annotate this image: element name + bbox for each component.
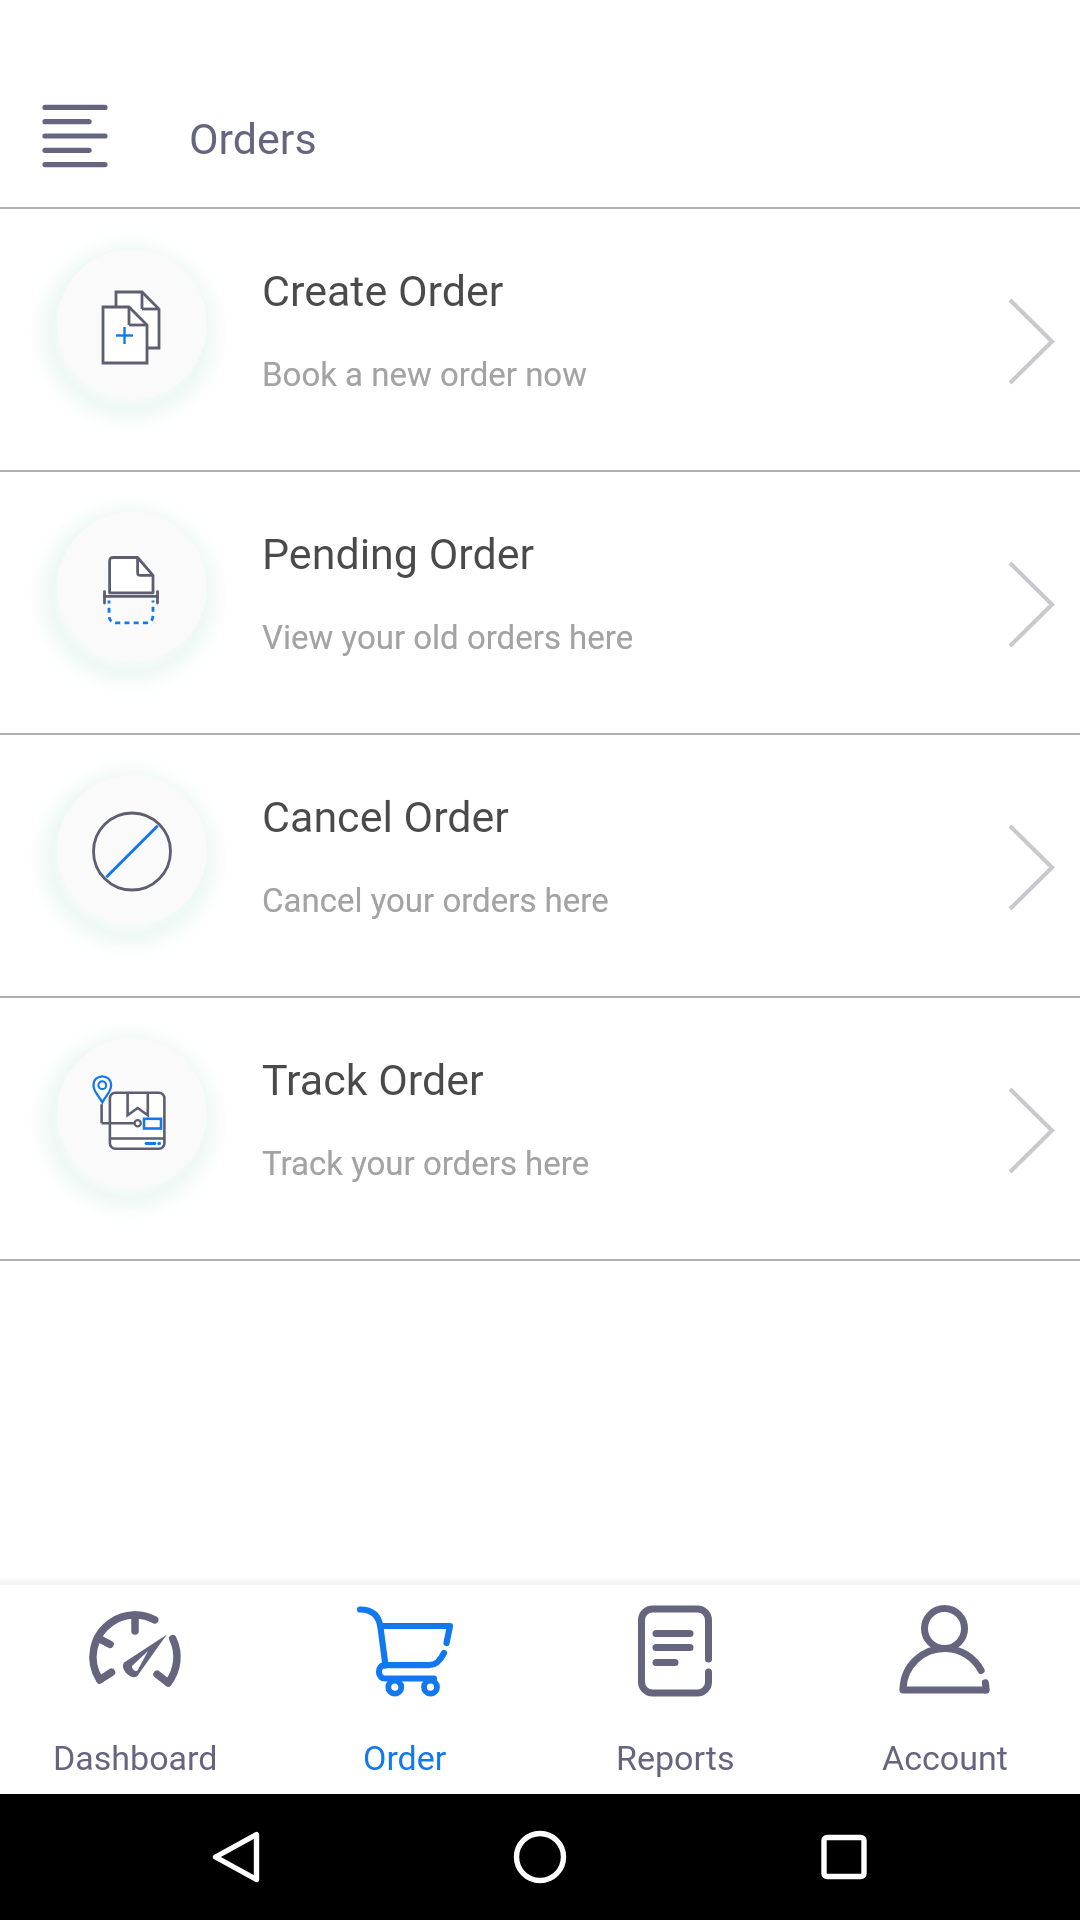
button[interactable]: Create Order (0, 209, 1080, 470)
staticText: Account (882, 1738, 1008, 1778)
button[interactable]: Track Order (0, 998, 1080, 1259)
button[interactable]: Order (270, 1585, 540, 1794)
button[interactable]: Reports (540, 1585, 810, 1794)
button[interactable]: Dashboard (0, 1585, 270, 1794)
staticText: Order (363, 1738, 447, 1778)
button[interactable]: Menu (28, 91, 118, 181)
button[interactable]: Cancel Order (0, 735, 1080, 996)
staticText: Create Order (262, 266, 504, 316)
staticText: View your old orders here (262, 618, 634, 657)
staticText: Dashboard (53, 1738, 218, 1778)
button[interactable]: Back (191, 1812, 281, 1902)
button[interactable]: Home (495, 1812, 585, 1902)
staticText: Pending Order (262, 529, 535, 579)
staticText: Orders (189, 114, 317, 164)
staticText: Track Order (262, 1055, 484, 1105)
button[interactable]: Account (810, 1585, 1080, 1794)
staticText: Cancel Order (262, 792, 509, 842)
button[interactable]: Pending Order (0, 472, 1080, 733)
staticText: Track your orders here (262, 1144, 590, 1183)
staticText: Reports (616, 1738, 735, 1778)
button[interactable]: Recents (799, 1812, 889, 1902)
staticText: Book a new order now (262, 355, 587, 394)
staticText: Cancel your orders here (262, 881, 609, 920)
